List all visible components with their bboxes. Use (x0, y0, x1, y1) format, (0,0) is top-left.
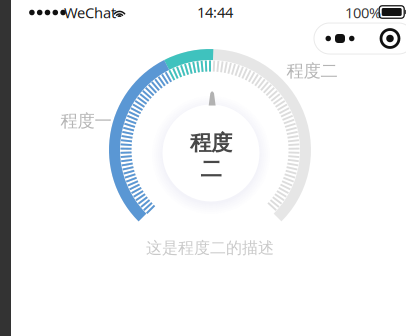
staticText: 二 (200, 156, 221, 182)
staticText: 14:44 (197, 2, 233, 22)
staticText: WeChat (64, 3, 116, 22)
staticText: 这是程度二的描述 (146, 238, 274, 258)
staticText: 100% (345, 3, 381, 22)
staticText: 程度 (190, 130, 232, 156)
staticText: 程度二 (286, 60, 337, 82)
button[interactable]: More (314, 23, 366, 54)
staticText: 程度一 (60, 110, 111, 132)
button[interactable]: Close (366, 23, 406, 54)
